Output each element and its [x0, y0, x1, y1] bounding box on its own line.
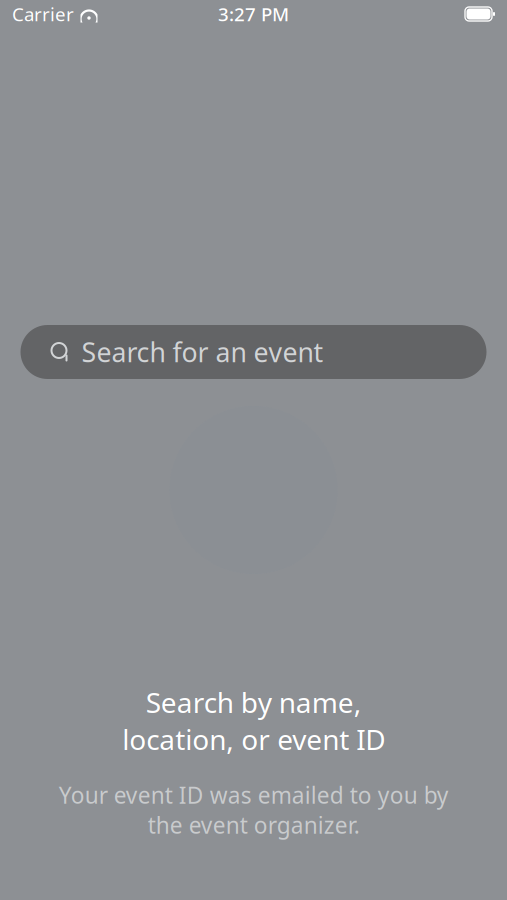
button[interactable]: Search for an event — [20, 325, 486, 379]
staticText: Search by name, location, or event ID — [122, 683, 385, 758]
staticText: Search for an event — [81, 334, 323, 370]
staticText: 3:27 PM — [218, 2, 289, 26]
staticText: Carrier — [12, 2, 74, 26]
staticText: Your event ID was emailed to you by the … — [58, 780, 448, 840]
